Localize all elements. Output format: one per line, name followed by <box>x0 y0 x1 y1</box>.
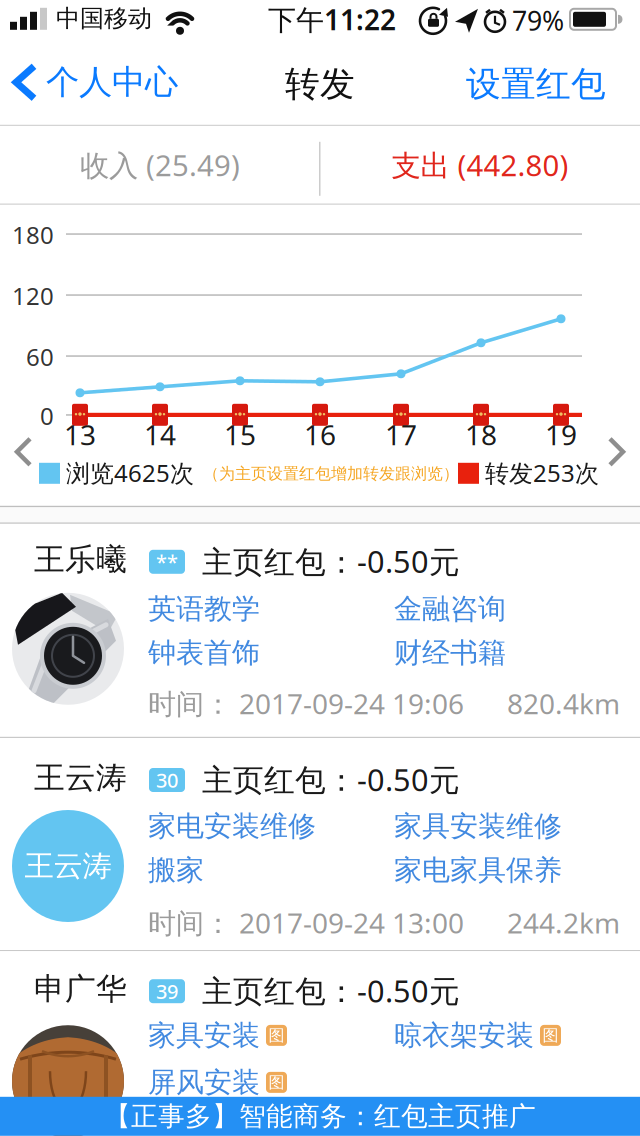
button[interactable]: 屏风安装 <box>148 1065 287 1100</box>
button[interactable]: 下一页 <box>606 437 626 467</box>
button[interactable]: 家具安装 <box>148 1018 287 1053</box>
staticText: 244.2km <box>507 904 620 941</box>
staticText: 14 <box>144 416 176 453</box>
staticText: 120 <box>12 280 54 312</box>
staticText: 王云涛 <box>24 848 111 884</box>
staticText: 39 <box>156 978 178 1004</box>
staticText: 金融咨询 <box>394 592 506 626</box>
staticText: 转发 <box>285 63 355 105</box>
staticText: 16 <box>304 416 336 453</box>
staticText: 图 <box>542 1026 558 1045</box>
staticText: 个人中心 <box>46 62 178 103</box>
staticText: 收入 (25.49) <box>80 145 240 184</box>
staticText: 17 <box>385 416 417 453</box>
staticText: 晾衣架安装 <box>394 1018 534 1053</box>
staticText: 申广华 <box>34 970 127 1008</box>
staticText: 820.4km <box>507 685 620 722</box>
staticText: 英语教学 <box>148 592 260 626</box>
button[interactable]: 晾衣架安装 <box>394 1018 561 1053</box>
button[interactable]: 个人中心 <box>12 62 178 103</box>
button[interactable]: 王云涛 <box>0 738 640 950</box>
button[interactable]: 家具安装维修 <box>394 809 562 843</box>
staticText: 时间： 2017-09-24 19:06 <box>148 685 464 722</box>
staticText: 家具安装 <box>148 1018 260 1053</box>
button[interactable]: 设置红包 <box>466 63 606 105</box>
staticText: 【正事多】智能商务：红包主页推广 <box>104 1100 536 1133</box>
staticText: 60 <box>26 341 54 373</box>
staticText: 设置红包 <box>466 63 606 105</box>
staticText: 王云涛 <box>34 759 127 797</box>
button[interactable]: 金融咨询 <box>394 592 506 626</box>
staticText: 13 <box>64 416 96 453</box>
staticText: 19 <box>545 416 577 453</box>
staticText: 30 <box>156 767 178 793</box>
button[interactable]: 钟表首饰 <box>148 636 260 670</box>
staticText: 财经书籍 <box>394 636 506 670</box>
staticText: 下午11:22 <box>268 1 396 38</box>
staticText: 主页红包：-0.50元 <box>202 541 460 581</box>
staticText: 家电安装维修 <box>148 809 316 843</box>
button[interactable]: 支出 (442.80) <box>320 126 640 204</box>
staticText: 18 <box>465 416 497 453</box>
staticText: 主页红包：-0.50元 <box>202 970 460 1011</box>
staticText: 家具安装维修 <box>394 809 562 843</box>
staticText: 180 <box>12 219 54 251</box>
button[interactable]: 收入 (25.49) <box>0 126 320 204</box>
button[interactable]: 家电安装维修 <box>148 809 316 843</box>
staticText: 图 <box>268 1073 284 1092</box>
staticText: 转发253次 <box>485 457 599 489</box>
staticText: 主页红包：-0.50元 <box>202 759 460 800</box>
staticText: 79% <box>512 3 564 38</box>
button[interactable]: 家电家具保养 <box>394 853 562 887</box>
staticText: 王乐曦 <box>34 541 127 578</box>
staticText: 0 <box>40 400 54 432</box>
staticText: 15 <box>224 416 256 453</box>
staticText: ** <box>156 548 178 575</box>
button[interactable]: 王乐曦 <box>0 524 640 737</box>
staticText: 屏风安装 <box>148 1065 260 1100</box>
button[interactable]: 申广华 <box>0 951 640 1136</box>
staticText: 中国移动 <box>56 4 152 33</box>
staticText: 浏览4625次 <box>66 457 194 489</box>
staticText: 搬家 <box>148 853 204 887</box>
staticText: 图 <box>268 1026 284 1045</box>
staticText: 家电家具保养 <box>394 853 562 887</box>
staticText: 时间： 2017-09-24 13:00 <box>148 904 464 941</box>
button[interactable]: 财经书籍 <box>394 636 506 670</box>
button[interactable]: 英语教学 <box>148 592 260 626</box>
button[interactable]: 搬家 <box>148 853 204 887</box>
staticText: （为主页设置红包增加转发跟浏览） <box>203 464 459 483</box>
button[interactable]: 【正事多】智能商务：红包主页推广 <box>0 1097 640 1136</box>
staticText: 支出 (442.80) <box>391 145 568 184</box>
staticText: 钟表首饰 <box>148 636 260 670</box>
button[interactable]: 上一页 <box>14 437 34 467</box>
